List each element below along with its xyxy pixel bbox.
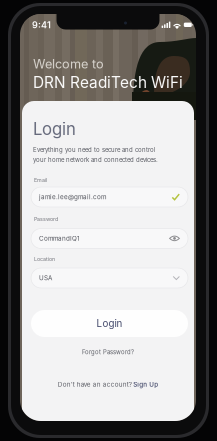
staticText: jamie.lee@gmail.com bbox=[39, 193, 106, 201]
staticText: Welcome to bbox=[33, 56, 104, 72]
staticText: Forgot Password? bbox=[82, 348, 134, 356]
staticText: Email bbox=[34, 177, 47, 183]
staticText: 9:41 bbox=[32, 19, 51, 30]
staticText: CommandIQ1 bbox=[39, 235, 80, 242]
staticText: DRN ReadiTech WiFi bbox=[33, 73, 183, 92]
staticText: Login bbox=[33, 119, 76, 139]
staticText: your home network and connected devices. bbox=[33, 156, 158, 163]
button[interactable]: Don't have an account? bbox=[48, 378, 168, 390]
button[interactable]: Login bbox=[31, 310, 188, 337]
staticText: Password bbox=[34, 216, 58, 222]
staticText: Don't have an account? bbox=[58, 381, 132, 388]
staticText: Everything you need to secure and contro… bbox=[33, 146, 155, 153]
button[interactable]: Forgot Password? bbox=[68, 346, 148, 358]
staticText: Login bbox=[96, 318, 122, 329]
staticText: Sign Up bbox=[133, 381, 158, 388]
staticText: Location bbox=[34, 256, 55, 262]
staticText: USA bbox=[39, 274, 52, 282]
